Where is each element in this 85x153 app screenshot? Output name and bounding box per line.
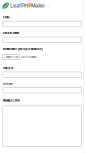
staticText: Subject — [3, 82, 13, 85]
staticText: No file chosen — [21, 55, 36, 58]
staticText: Message Letter — [3, 99, 20, 102]
staticText: Email — [3, 16, 10, 19]
staticText: Attachment (Multiple selection) — [3, 48, 43, 51]
staticText: Sender Name — [3, 32, 19, 35]
staticText: Leaf PHPMailer — [10, 3, 45, 9]
staticText: Choose Files — [4, 55, 18, 58]
staticText: 2.3 — [46, 4, 49, 7]
button[interactable]: Choose Files — [3, 54, 19, 60]
staticText: Reply to — [3, 66, 14, 69]
